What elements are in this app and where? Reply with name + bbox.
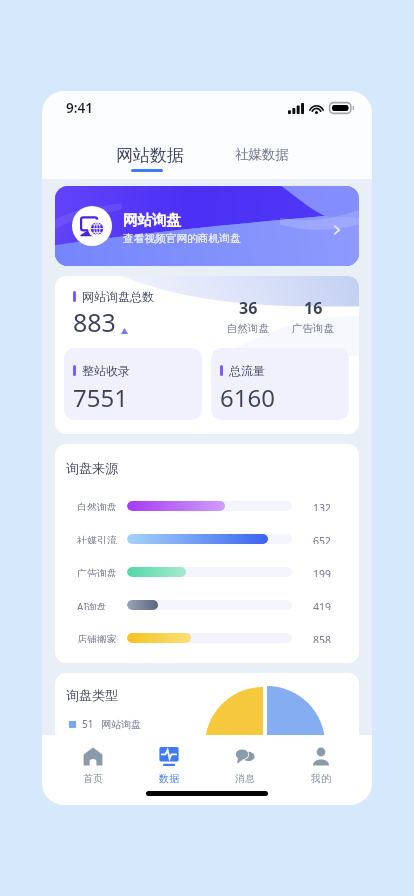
staticText: 网站询盘 — [123, 211, 181, 229]
button[interactable]: 36 — [218, 297, 278, 335]
other: 查看详情 — [329, 222, 345, 238]
button[interactable]: 社媒数据 — [223, 124, 301, 175]
button[interactable]: 消息 — [220, 747, 270, 785]
button[interactable]: 网站数据 — [104, 124, 196, 176]
button[interactable]: 数据 — [144, 747, 194, 785]
staticText: 整站收录 — [82, 363, 130, 378]
staticText: 首页 — [83, 772, 103, 785]
staticText: 查看视频官网的商机询盘 — [123, 232, 241, 245]
staticText: 16 — [304, 297, 323, 319]
staticText: 9:41 — [66, 99, 93, 117]
button[interactable]: 我的 — [296, 747, 346, 785]
button[interactable]: 首页 — [68, 747, 118, 785]
staticText: 店铺搬家 — [77, 633, 121, 643]
staticText: 自然询盘 — [227, 322, 269, 335]
staticText: 网站数据 — [116, 145, 184, 166]
staticText: 总流量 — [229, 363, 265, 378]
staticText: 广告询盘 — [292, 322, 334, 335]
staticText: 7551 — [73, 381, 128, 414]
staticText: 询盘来源 — [66, 460, 118, 476]
staticText: 419 — [313, 600, 337, 610]
staticText: 858 — [313, 633, 337, 643]
staticText: AI询盘 — [77, 600, 121, 610]
staticText: 广告询盘 — [77, 567, 121, 577]
staticText: 社媒数据 — [235, 146, 289, 163]
staticText: 消息 — [235, 772, 255, 785]
staticText: 我的 — [311, 772, 331, 785]
staticText: 132 — [313, 501, 337, 511]
button[interactable]: 16 — [283, 297, 343, 335]
staticText: 网站询盘总数 — [82, 289, 154, 304]
staticText: 652 — [313, 534, 337, 544]
staticText: 数据 — [159, 772, 179, 785]
staticText: 199 — [313, 567, 337, 577]
staticText: 6160 — [220, 381, 275, 414]
staticText: 询盘类型 — [66, 687, 118, 703]
staticText: 51 网站询盘 — [82, 717, 142, 731]
staticText: 社媒引流 — [77, 534, 121, 544]
staticText: 自然询盘 — [77, 501, 121, 511]
staticText: 36 — [239, 297, 258, 319]
button[interactable]: 网站询盘 — [55, 186, 359, 266]
staticText: 883 — [73, 305, 116, 339]
